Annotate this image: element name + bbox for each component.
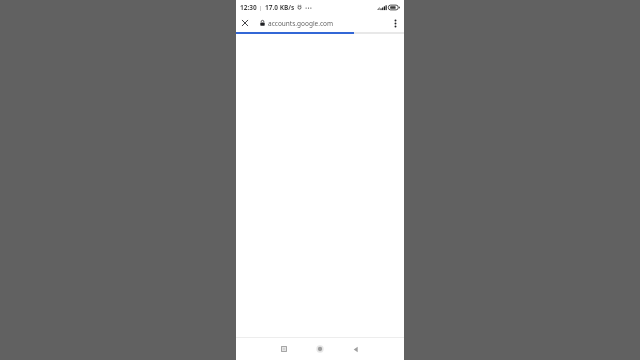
staticText: 12:30 (240, 3, 257, 12)
button[interactable]: Recent apps (269, 338, 299, 360)
button[interactable]: Back (341, 338, 371, 360)
button[interactable]: Home (305, 338, 335, 360)
button[interactable]: accounts.google.com (254, 14, 386, 32)
staticText: | (259, 4, 263, 12)
button[interactable]: More options (386, 14, 404, 32)
button[interactable]: Close (236, 14, 254, 32)
staticText: accounts.google.com (268, 19, 334, 28)
staticText: 17.0 KB/s (265, 3, 295, 12)
